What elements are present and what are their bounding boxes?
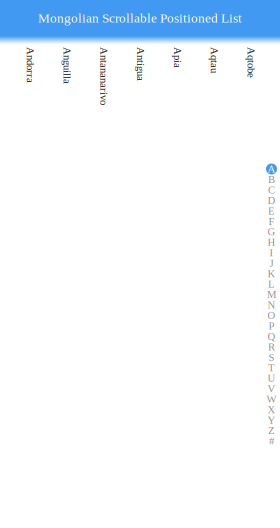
staticText: A	[267, 163, 275, 175]
button[interactable]: I	[264, 247, 278, 258]
button[interactable]: U	[264, 373, 278, 383]
staticText: #	[269, 435, 274, 447]
button[interactable]: V	[264, 383, 278, 394]
staticText: U	[267, 372, 275, 384]
button[interactable]: P	[264, 321, 278, 331]
button[interactable]: A	[264, 164, 278, 174]
button[interactable]: L	[264, 279, 278, 289]
button[interactable]: C	[264, 185, 278, 195]
button[interactable]: Y	[264, 415, 278, 425]
staticText: Y	[267, 414, 275, 426]
staticText: D	[267, 194, 275, 206]
staticText: T	[268, 362, 275, 374]
button[interactable]: E	[264, 206, 278, 216]
staticText: H	[267, 236, 275, 248]
staticText: F	[268, 215, 274, 227]
button[interactable]: K	[264, 268, 278, 279]
staticText: V	[267, 383, 275, 395]
button[interactable]: W	[264, 394, 278, 404]
button[interactable]: N	[264, 300, 278, 310]
button[interactable]: M	[264, 289, 278, 300]
staticText: E	[268, 205, 275, 217]
button[interactable]: F	[264, 216, 278, 227]
button[interactable]: B	[264, 174, 278, 185]
button[interactable]: X	[264, 404, 278, 415]
staticText: Mongolian Scrollable Positioned List	[38, 11, 242, 25]
button[interactable]: T	[264, 362, 278, 373]
staticText: Q	[267, 330, 275, 342]
staticText: P	[268, 320, 274, 332]
button[interactable]: D	[264, 195, 278, 206]
staticText: W	[266, 393, 276, 405]
staticText: N	[267, 299, 275, 311]
staticText: B	[268, 174, 275, 185]
staticText: L	[268, 278, 275, 290]
button[interactable]: O	[264, 310, 278, 321]
button[interactable]: Q	[264, 331, 278, 342]
staticText: G	[267, 226, 275, 238]
button[interactable]: S	[264, 352, 278, 363]
staticText: J	[269, 257, 273, 269]
button[interactable]: G	[264, 226, 278, 237]
staticText: K	[267, 268, 275, 279]
button[interactable]: Z	[264, 425, 278, 436]
button[interactable]: R	[264, 342, 278, 352]
button[interactable]: J	[264, 258, 278, 268]
button[interactable]: H	[264, 237, 278, 247]
staticText: M	[267, 289, 276, 300]
staticText: S	[268, 351, 274, 363]
staticText: X	[267, 404, 275, 415]
staticText: O	[267, 309, 275, 321]
button[interactable]: #	[264, 436, 278, 446]
staticText: Z	[268, 425, 275, 436]
staticText: I	[269, 247, 273, 259]
staticText: C	[268, 184, 275, 196]
staticText: R	[268, 341, 275, 353]
